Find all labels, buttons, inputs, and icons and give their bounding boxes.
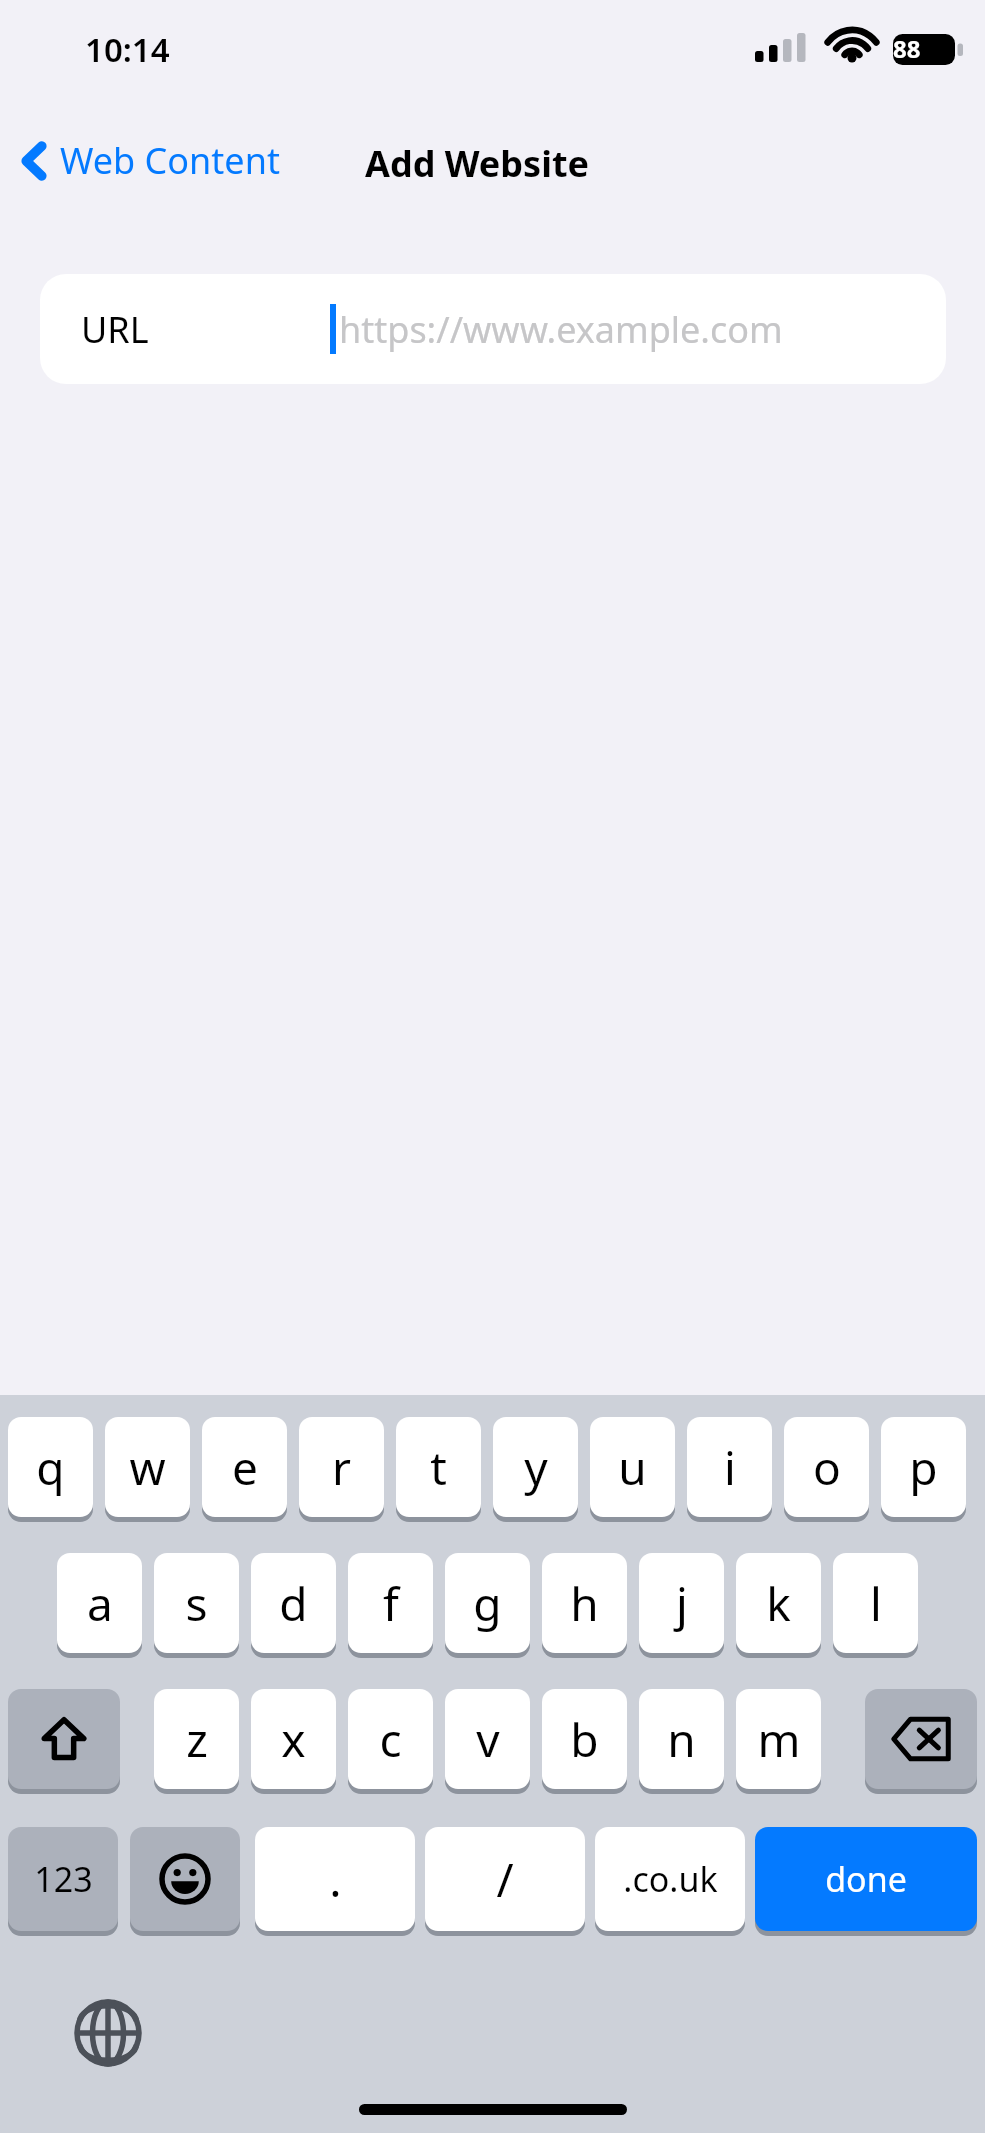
staticText: a <box>87 1572 113 1635</box>
staticText: x <box>281 1708 306 1771</box>
button[interactable]: e <box>202 1417 287 1517</box>
staticText: f <box>383 1572 399 1635</box>
button[interactable]: h <box>542 1553 627 1653</box>
staticText: done <box>825 1856 907 1902</box>
staticText: r <box>332 1436 351 1499</box>
button[interactable]: i <box>687 1417 772 1517</box>
staticText: b <box>570 1708 599 1771</box>
staticText: i <box>724 1436 736 1499</box>
staticText: e <box>232 1436 258 1499</box>
button[interactable]: j <box>639 1553 724 1653</box>
button[interactable]: p <box>881 1417 966 1517</box>
button[interactable]: Emoji <box>130 1827 240 1931</box>
button[interactable]: 123 <box>8 1827 118 1931</box>
staticText: 10:14 <box>85 27 170 72</box>
staticText: n <box>667 1708 696 1771</box>
staticText: v <box>476 1708 500 1771</box>
staticText: t <box>430 1436 447 1499</box>
staticText: s <box>185 1572 208 1635</box>
button[interactable]: d <box>251 1553 336 1653</box>
button[interactable]: done <box>755 1827 977 1931</box>
button[interactable]: s <box>154 1553 239 1653</box>
staticText: . <box>329 1848 342 1911</box>
staticText: Add Website <box>365 139 590 188</box>
button[interactable]: t <box>396 1417 481 1517</box>
button[interactable]: / <box>425 1827 585 1931</box>
staticText: j <box>676 1572 688 1635</box>
button[interactable]: u <box>590 1417 675 1517</box>
button[interactable]: k <box>736 1553 821 1653</box>
staticText: Web Content <box>60 136 280 185</box>
button[interactable]: Web Content <box>12 128 288 193</box>
staticText: d <box>279 1572 308 1635</box>
staticText: .co.uk <box>623 1856 718 1902</box>
staticText: / <box>496 1848 514 1911</box>
staticText: w <box>129 1436 166 1499</box>
button[interactable]: g <box>445 1553 530 1653</box>
staticText: URL <box>81 305 149 354</box>
staticText: https://www.example.com <box>339 305 783 354</box>
button[interactable]: l <box>833 1553 918 1653</box>
button[interactable]: a <box>57 1553 142 1653</box>
staticText: 88 <box>893 32 921 65</box>
button[interactable]: o <box>784 1417 869 1517</box>
button[interactable]: z <box>154 1689 239 1789</box>
button[interactable]: r <box>299 1417 384 1517</box>
button[interactable]: Shift <box>8 1689 120 1789</box>
button[interactable]: q <box>8 1417 93 1517</box>
button[interactable]: w <box>105 1417 190 1517</box>
button[interactable]: f <box>348 1553 433 1653</box>
staticText: y <box>524 1436 548 1499</box>
button[interactable]: n <box>639 1689 724 1789</box>
staticText: 123 <box>34 1856 93 1902</box>
staticText: c <box>379 1708 402 1771</box>
button[interactable]: b <box>542 1689 627 1789</box>
button[interactable]: v <box>445 1689 530 1789</box>
staticText: o <box>813 1436 841 1499</box>
staticText: k <box>766 1572 791 1635</box>
staticText: q <box>36 1436 65 1499</box>
button[interactable]: c <box>348 1689 433 1789</box>
button[interactable]: . <box>255 1827 415 1931</box>
staticText: p <box>909 1436 938 1499</box>
button[interactable]: Backspace <box>865 1689 977 1789</box>
button[interactable]: .co.uk <box>595 1827 745 1931</box>
button[interactable]: m <box>736 1689 821 1789</box>
button[interactable]: y <box>493 1417 578 1517</box>
staticText: m <box>757 1708 801 1771</box>
staticText: u <box>618 1436 647 1499</box>
staticText: z <box>186 1708 208 1771</box>
staticText: h <box>570 1572 599 1635</box>
button[interactable]: x <box>251 1689 336 1789</box>
staticText: g <box>473 1572 502 1635</box>
staticText: l <box>870 1572 882 1635</box>
button[interactable]: Change keyboard language <box>68 1993 148 2073</box>
button[interactable]: URL <box>40 274 946 384</box>
